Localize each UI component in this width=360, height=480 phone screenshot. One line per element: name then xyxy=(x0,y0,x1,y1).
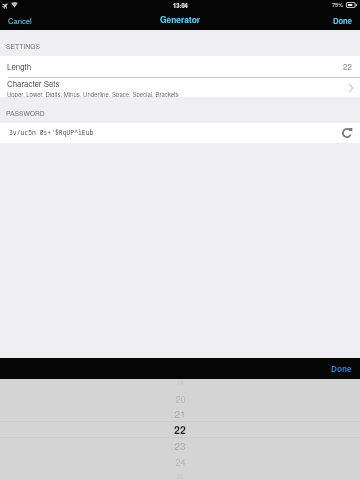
staticText: PASSWORD xyxy=(6,108,45,118)
button[interactable]: Done xyxy=(325,13,360,28)
staticText: 20 xyxy=(175,392,186,405)
staticText: 3v/uc5n 0s+'$RqUP^ìEub xyxy=(9,128,94,137)
staticText: 24 xyxy=(175,455,186,468)
staticText: Done xyxy=(331,363,352,375)
staticText: 22 xyxy=(174,422,186,436)
staticText: 23 xyxy=(174,438,186,452)
staticText: 25 xyxy=(176,472,184,480)
button[interactable]: Character Sets xyxy=(0,78,360,97)
staticText: Length xyxy=(7,61,32,72)
staticText: Character Sets xyxy=(7,78,60,89)
button[interactable]: Cancel xyxy=(0,13,40,28)
button[interactable]: Length xyxy=(0,56,360,77)
staticText: 19 xyxy=(176,378,184,387)
staticText: 21 xyxy=(174,406,186,420)
staticText: 13:04 xyxy=(173,1,188,9)
staticText: Upper, Lower, Digits, Minus, Underline, … xyxy=(7,90,179,97)
staticText: Cancel xyxy=(8,15,32,26)
staticText: SETTINGS xyxy=(6,41,40,51)
staticText: Generator xyxy=(160,14,201,26)
staticText: 75% xyxy=(332,1,344,9)
button[interactable]: Done xyxy=(323,359,360,379)
staticText: Done xyxy=(333,15,352,26)
staticText: 22 xyxy=(343,61,352,72)
button[interactable]: Regenerate password xyxy=(340,126,354,140)
